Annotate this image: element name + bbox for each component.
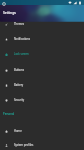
button[interactable]: System profiles	[0, 137, 84, 150]
staticText: System profiles	[14, 143, 34, 147]
staticText: Lock screen	[14, 52, 29, 56]
staticText: Home	[14, 129, 22, 133]
button[interactable]: Notifications	[0, 31, 84, 46]
staticText: Battery	[14, 83, 24, 87]
staticText: Notifications	[14, 37, 30, 41]
staticText: Themes	[14, 22, 24, 26]
staticText: Personal	[3, 112, 15, 116]
button[interactable]: Lock screen	[0, 46, 84, 61]
staticText: Settings	[3, 10, 16, 15]
staticText: Security	[14, 98, 25, 102]
button[interactable]: Home	[0, 123, 84, 138]
button[interactable]: Buttons	[0, 62, 84, 77]
button[interactable]: Battery	[0, 77, 84, 92]
staticText: Buttons	[14, 68, 24, 72]
button[interactable]: Security	[0, 92, 84, 107]
button[interactable]: Themes	[0, 16, 84, 31]
